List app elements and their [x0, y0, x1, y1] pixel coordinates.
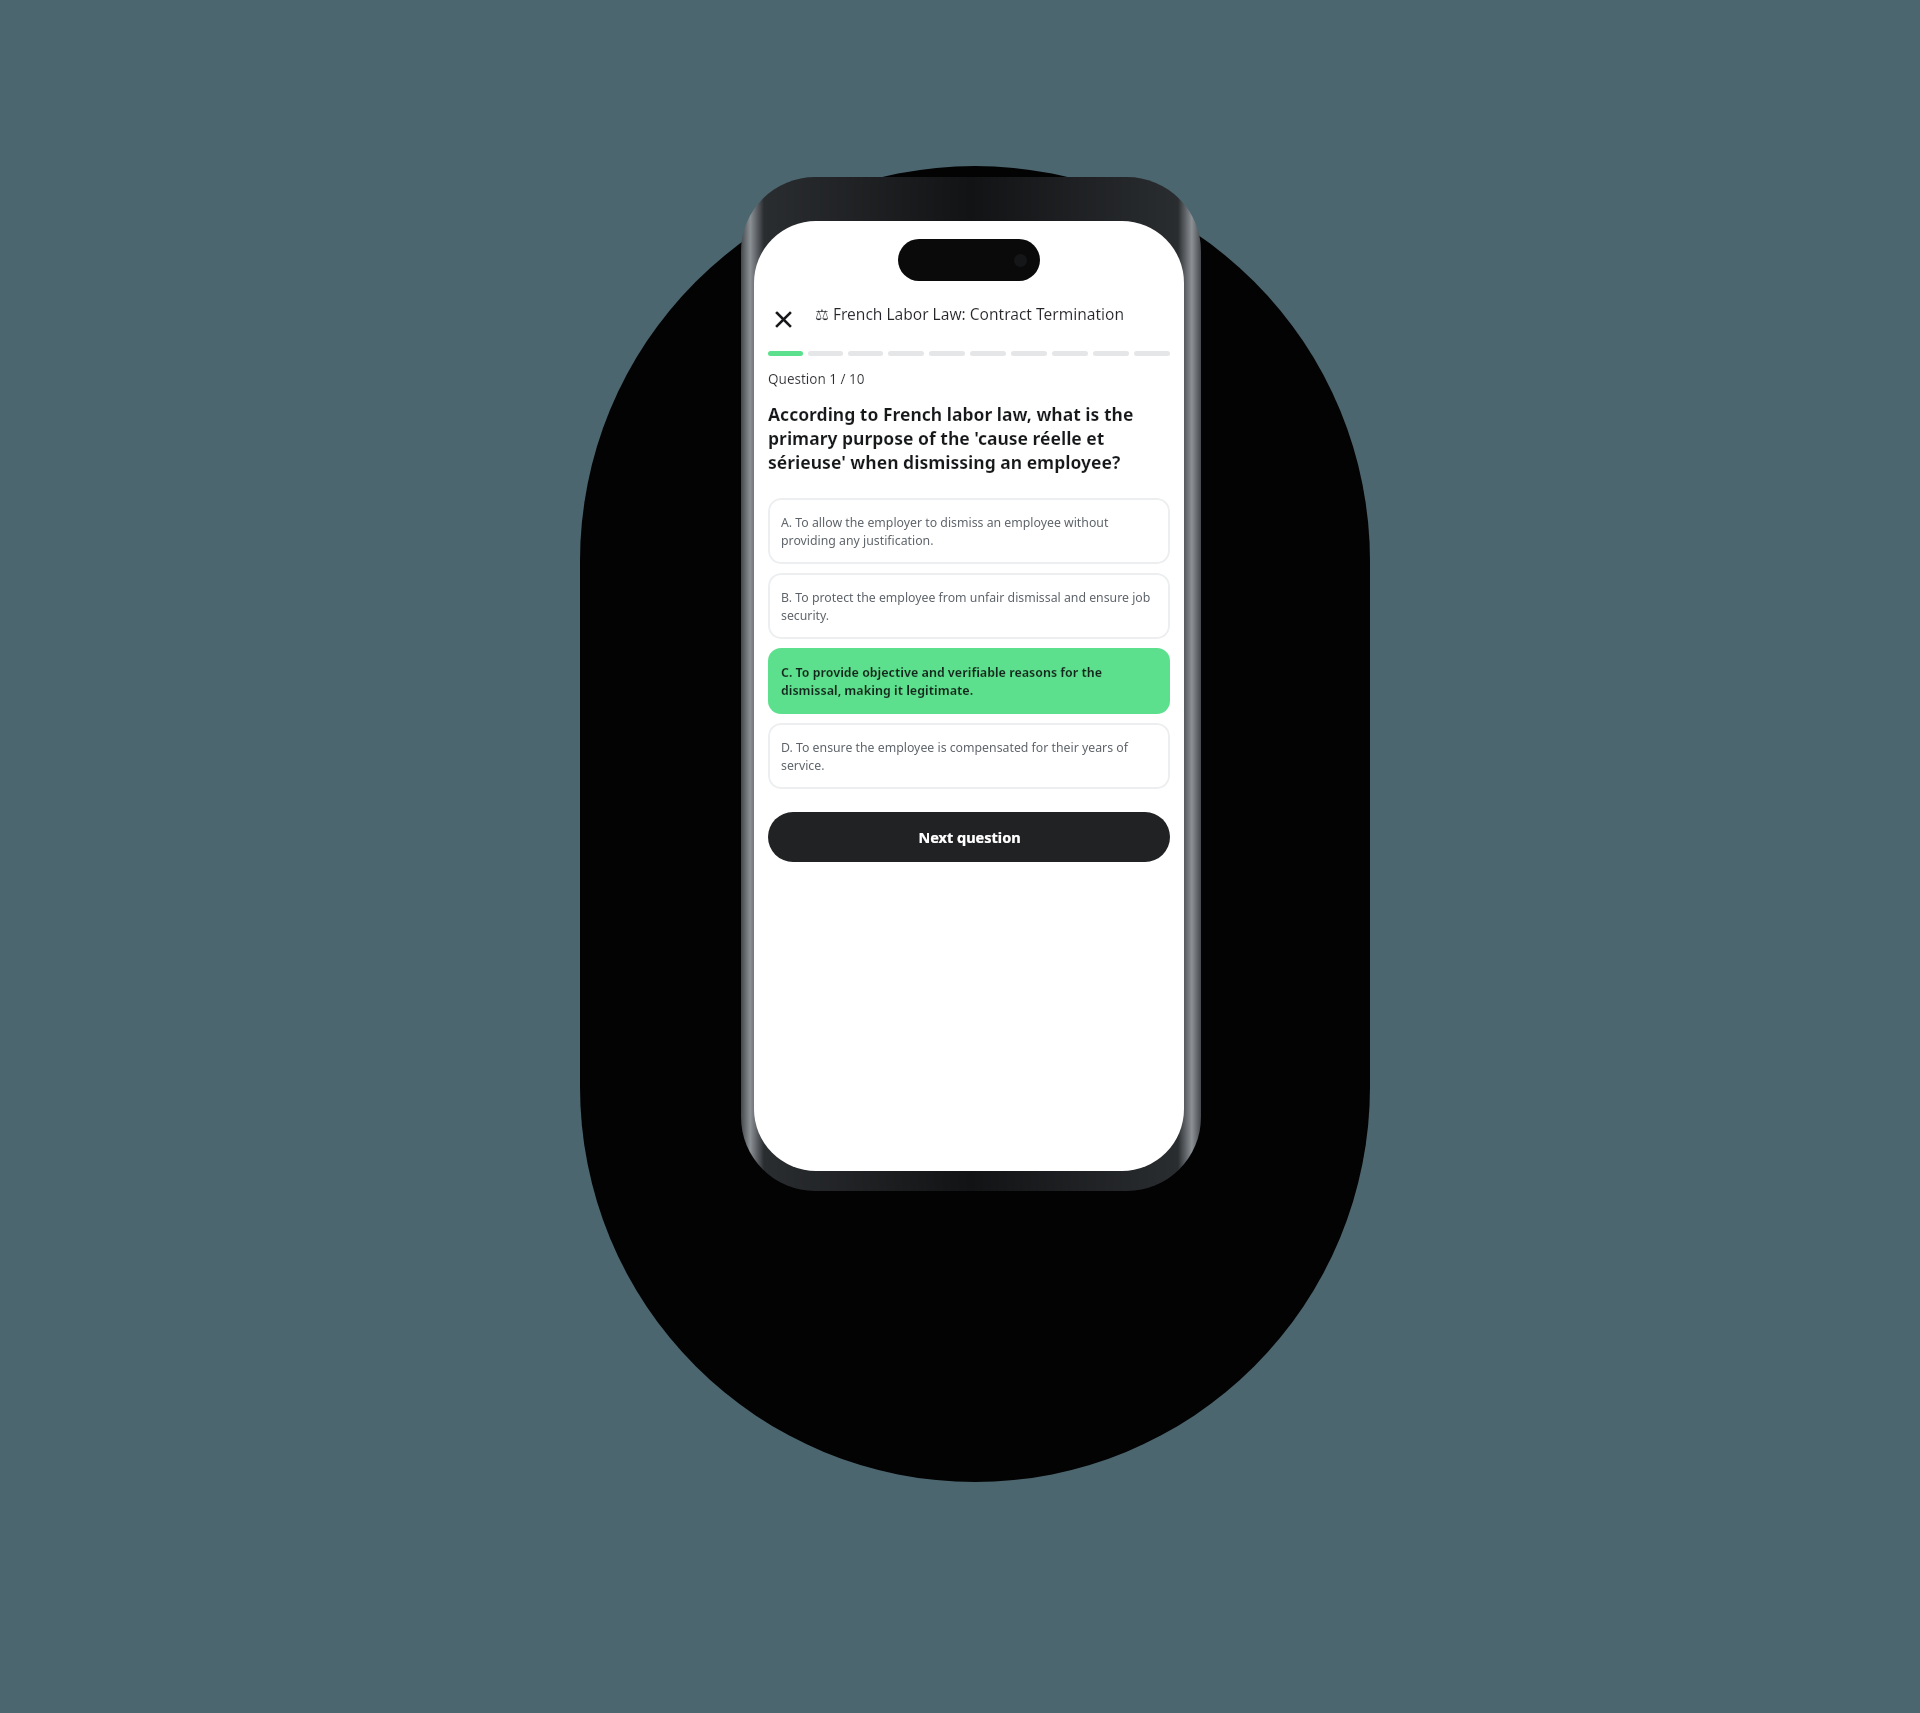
button[interactable]: C. To provide objective and verifiable r…: [768, 648, 1170, 714]
staticText: According to French labor law, what is t…: [768, 402, 1170, 474]
staticText: ⚖️ French Labor Law: Contract Terminatio…: [815, 303, 1124, 324]
button[interactable]: Close: [768, 304, 798, 334]
button[interactable]: A. To allow the employer to dismiss an e…: [768, 498, 1170, 564]
staticText: Next question: [918, 827, 1021, 847]
staticText: D. To ensure the employee is compensated…: [781, 739, 1157, 773]
staticText: Question 1 / 10: [768, 370, 865, 388]
button[interactable]: D. To ensure the employee is compensated…: [768, 723, 1170, 789]
button[interactable]: B. To protect the employee from unfair d…: [768, 573, 1170, 639]
staticText: B. To protect the employee from unfair d…: [781, 589, 1157, 623]
staticText: A. To allow the employer to dismiss an e…: [781, 514, 1157, 548]
button[interactable]: Next question: [768, 812, 1170, 862]
staticText: C. To provide objective and verifiable r…: [781, 664, 1157, 698]
